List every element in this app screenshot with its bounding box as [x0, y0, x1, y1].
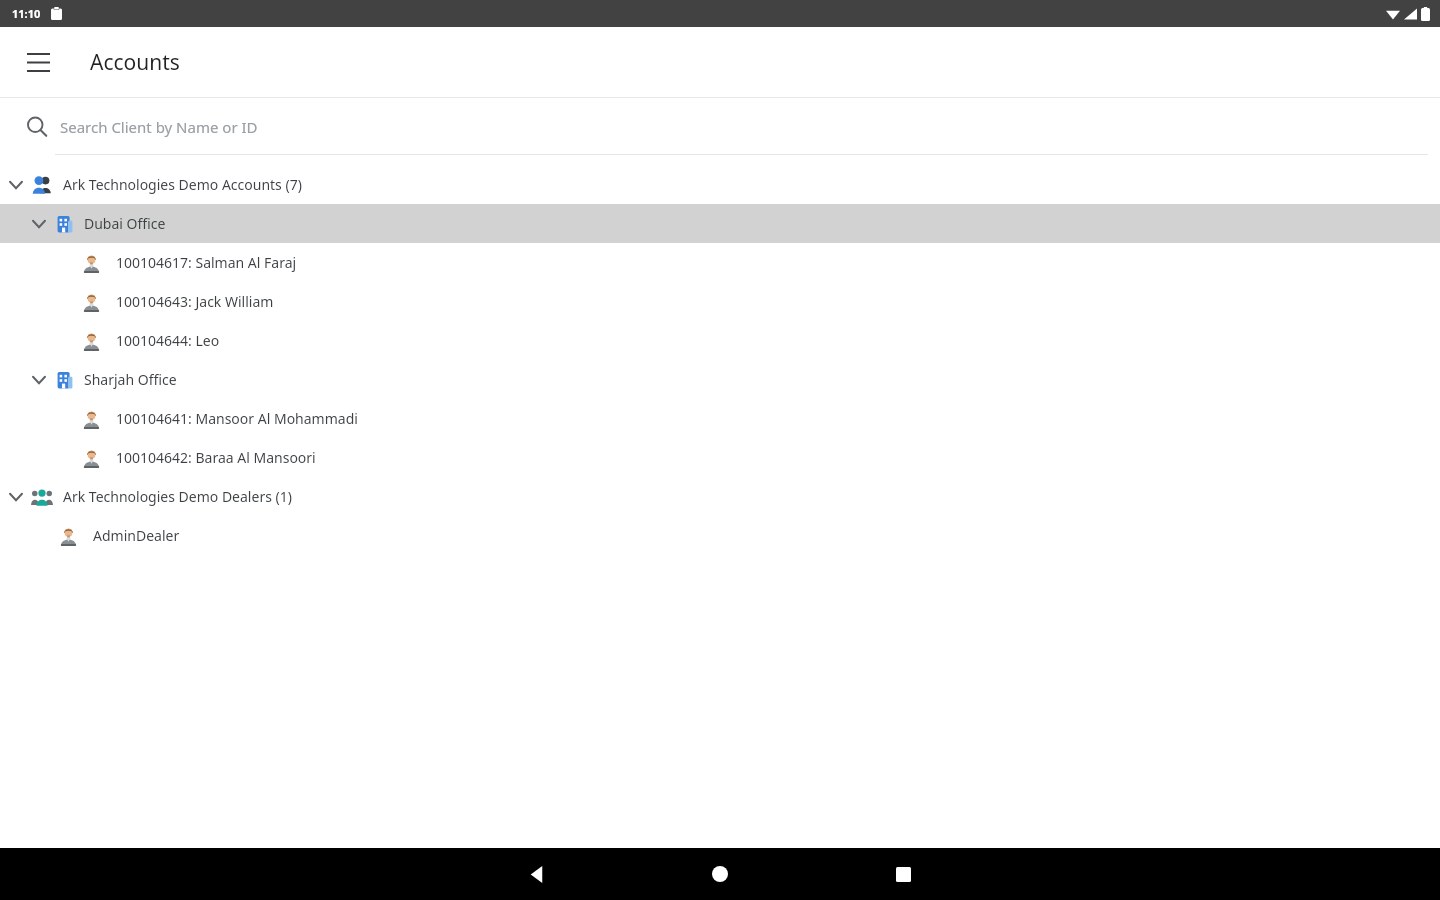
- staticText: 100104644: Leo: [116, 331, 220, 350]
- button[interactable]: 100104643: Jack William: [0, 282, 1440, 321]
- staticText: Ark Technologies Demo Accounts (7): [63, 175, 302, 194]
- staticText: Dubai Office: [84, 214, 166, 233]
- staticText: 100104641: Mansoor Al Mohammadi: [116, 409, 358, 428]
- staticText: 100104617: Salman Al Faraj: [116, 253, 297, 272]
- staticText: AdminDealer: [93, 526, 180, 545]
- staticText: 11:10: [12, 6, 41, 21]
- staticText: Search Client by Name or ID: [60, 117, 258, 137]
- button[interactable]: 100104641: Mansoor Al Mohammadi: [0, 399, 1440, 438]
- other: Search: [26, 116, 48, 138]
- button[interactable]: 100104617: Salman Al Faraj: [0, 243, 1440, 282]
- button[interactable]: Search: [0, 98, 1440, 155]
- button[interactable]: Open navigation menu: [14, 38, 62, 86]
- button[interactable]: Dubai Office: [0, 204, 1440, 243]
- button[interactable]: 100104644: Leo: [0, 321, 1440, 360]
- button[interactable]: AdminDealer: [0, 516, 1440, 555]
- button[interactable]: 100104642: Baraa Al Mansoori: [0, 438, 1440, 477]
- button[interactable]: Sharjah Office: [0, 360, 1440, 399]
- staticText: Accounts: [90, 48, 180, 77]
- button[interactable]: Ark Technologies Demo Accounts (7): [0, 165, 1440, 204]
- staticText: Ark Technologies Demo Dealers (1): [63, 487, 292, 506]
- button[interactable]: Home: [696, 850, 744, 898]
- button[interactable]: Ark Technologies Demo Dealers (1): [0, 477, 1440, 516]
- staticText: 100104642: Baraa Al Mansoori: [116, 448, 316, 467]
- button[interactable]: Recent apps: [879, 850, 927, 898]
- button[interactable]: Back: [513, 850, 561, 898]
- staticText: Sharjah Office: [84, 370, 177, 389]
- staticText: 100104643: Jack William: [116, 292, 274, 311]
